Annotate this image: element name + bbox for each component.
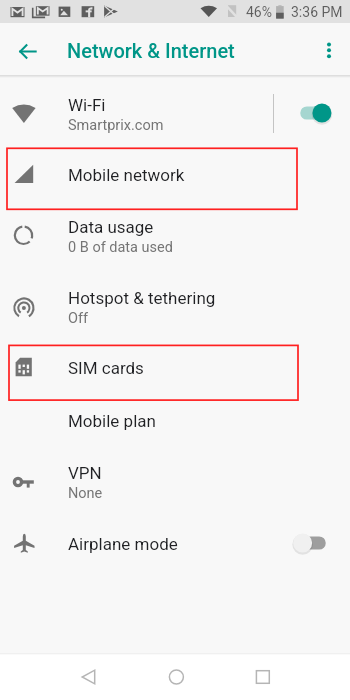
staticText: Smartprix.com — [68, 117, 164, 134]
button[interactable]: Home — [152, 653, 199, 700]
staticText: Mobile plan — [68, 411, 156, 431]
button[interactable]: Recent apps — [239, 653, 286, 700]
button[interactable]: Hotspot & tethering — [0, 271, 350, 341]
staticText: 3:36 PM — [291, 4, 343, 20]
staticText: Airplane mode — [68, 534, 178, 554]
staticText: 46% — [246, 4, 272, 20]
button[interactable]: Mobile plan — [0, 393, 350, 446]
button[interactable]: Turn on — [293, 526, 333, 560]
staticText: Data usage — [68, 217, 154, 237]
staticText: Network & Internet — [67, 39, 235, 62]
button[interactable]: VPN — [0, 446, 350, 517]
button[interactable]: Data usage — [0, 200, 350, 271]
staticText: Hotspot & tethering — [68, 288, 216, 308]
button[interactable]: Mobile network — [0, 148, 350, 200]
staticText: Mobile network — [68, 165, 185, 185]
staticText: Off — [68, 310, 89, 327]
staticText: SIM cards — [68, 358, 144, 378]
button[interactable]: Airplane mode — [0, 517, 350, 569]
button[interactable]: Turn off — [293, 96, 333, 130]
button[interactable]: Wi-Fi — [0, 78, 350, 148]
button[interactable]: Back — [64, 653, 111, 700]
staticText: Wi-Fi — [68, 95, 106, 115]
staticText: 0 B of data used — [68, 239, 173, 256]
button[interactable]: More options — [314, 33, 344, 63]
button[interactable]: Back — [10, 33, 45, 68]
staticText: VPN — [68, 463, 102, 483]
button[interactable]: SIM cards — [0, 341, 350, 393]
staticText: None — [68, 485, 103, 502]
